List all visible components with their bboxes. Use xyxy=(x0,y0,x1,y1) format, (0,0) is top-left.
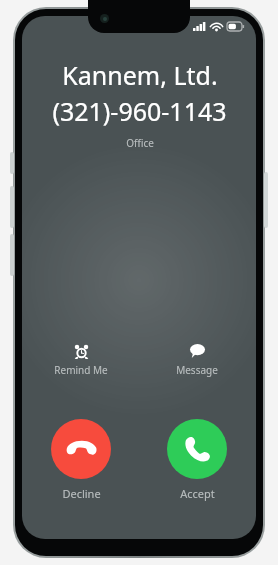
button[interactable]: Accept call xyxy=(152,419,242,501)
button[interactable]: Decline call xyxy=(36,419,126,501)
staticText: Remind Me xyxy=(54,363,108,377)
staticText: Kannem, Ltd. xyxy=(62,58,218,92)
button[interactable]: Message xyxy=(152,341,242,379)
staticText: Decline xyxy=(62,486,101,501)
staticText: Message xyxy=(176,363,218,377)
staticText: Office xyxy=(126,136,154,150)
staticText: (321)-960-1143 xyxy=(52,94,227,128)
button[interactable]: Remind Me xyxy=(36,341,126,379)
staticText: Accept xyxy=(180,486,215,501)
